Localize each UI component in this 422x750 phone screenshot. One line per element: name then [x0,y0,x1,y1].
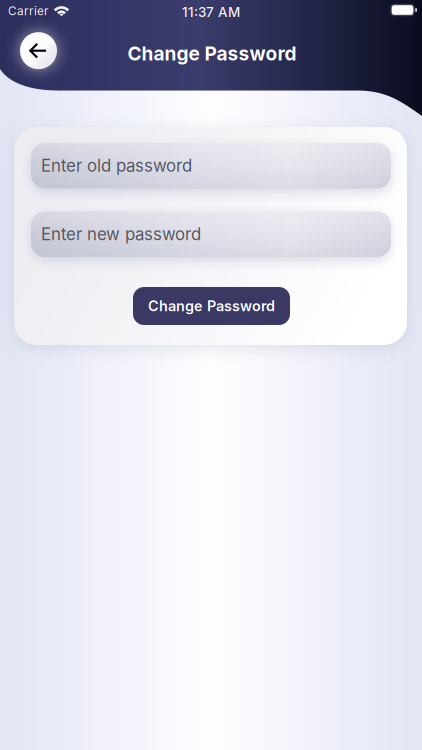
staticText: Change Password [148,297,275,315]
staticText: 11:37 AM [182,4,240,20]
staticText: Enter new password [41,224,201,244]
staticText: Change Password [127,42,296,65]
button[interactable]: Change Password [133,287,290,325]
staticText: Carrier [8,4,48,18]
button[interactable]: Back [10,23,66,79]
staticText: Enter old password [41,156,192,176]
